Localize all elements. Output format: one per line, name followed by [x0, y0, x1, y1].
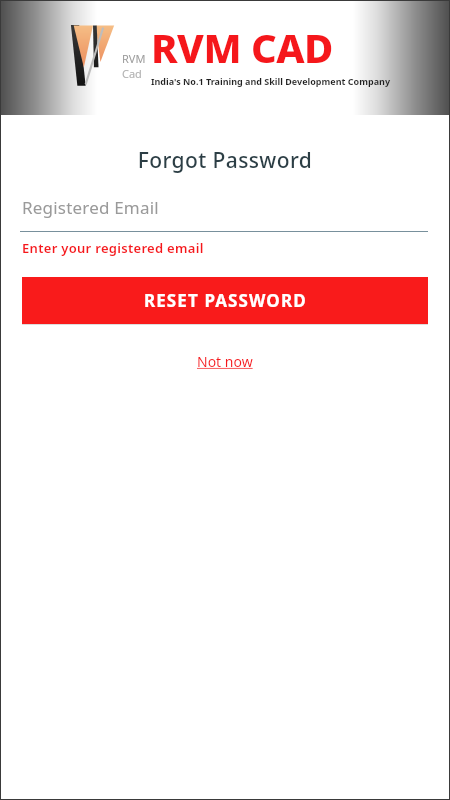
staticText: Forgot Password: [0, 146, 450, 175]
button[interactable]: Not now: [187, 348, 263, 375]
button[interactable]: Reset password: [22, 277, 428, 324]
staticText: Cad: [122, 66, 142, 81]
staticText: RVM: [122, 51, 146, 66]
staticText: RVM CAD: [151, 20, 333, 74]
button[interactable]: Registered Email: [0, 196, 450, 232]
staticText: Registered Email: [22, 196, 159, 219]
staticText: Enter your registered email: [22, 239, 204, 257]
staticText: India's No.1 Training and Skill Developm…: [151, 75, 391, 87]
staticText: RESET PASSWORD: [144, 289, 307, 312]
